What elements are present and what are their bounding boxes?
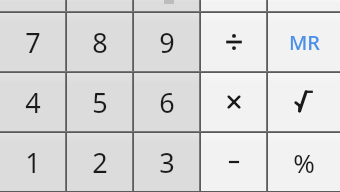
- staticText: 7: [25, 24, 41, 61]
- button[interactable]: 5: [67, 73, 132, 131]
- staticText: 9: [159, 24, 175, 61]
- button[interactable]: Multiply: [201, 73, 266, 131]
- button[interactable]: 7: [0, 13, 65, 71]
- button[interactable]: Minus: [201, 133, 266, 191]
- staticText: 8: [92, 24, 108, 61]
- button[interactable]: 1: [0, 133, 65, 191]
- staticText: 5: [92, 84, 108, 121]
- staticText: %: [293, 145, 315, 180]
- button[interactable]: [134, 0, 199, 11]
- button[interactable]: 4: [0, 73, 65, 131]
- button[interactable]: 3: [134, 133, 199, 191]
- button[interactable]: Square root: [268, 73, 340, 131]
- button[interactable]: 2: [67, 133, 132, 191]
- button[interactable]: 6: [134, 73, 199, 131]
- button[interactable]: Divide: [201, 13, 266, 71]
- staticText: 4: [25, 84, 41, 121]
- button[interactable]: 9: [134, 13, 199, 71]
- staticText: 6: [159, 84, 175, 121]
- staticText: 3: [159, 144, 175, 181]
- button[interactable]: %: [268, 133, 340, 191]
- button[interactable]: MR: [268, 13, 340, 71]
- staticText: 2: [92, 144, 108, 181]
- staticText: 1: [25, 144, 41, 181]
- staticText: MR: [289, 29, 320, 56]
- button[interactable]: 8: [67, 13, 132, 71]
